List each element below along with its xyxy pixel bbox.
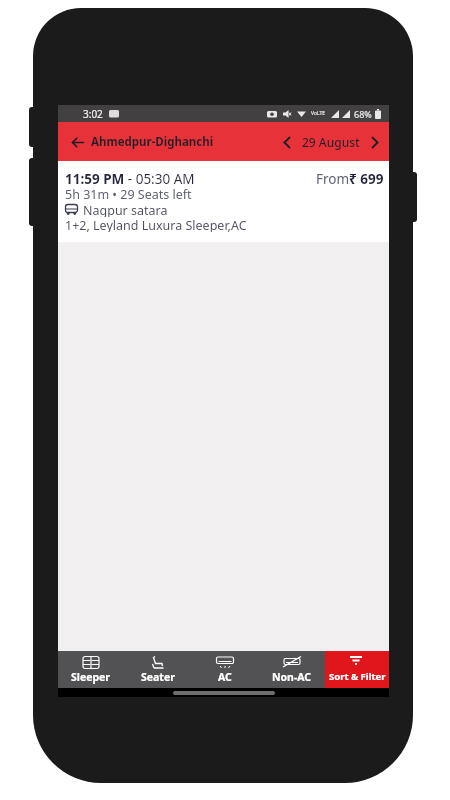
staticText: From₹ 699 (316, 170, 384, 186)
staticText: 3:02 (83, 107, 103, 121)
staticText: Ahmedpur-Dighanchi (91, 134, 214, 150)
staticText: 11:59 PM - 05:30 AM (65, 170, 195, 186)
staticText: Non-AC (272, 670, 312, 684)
staticText: 1+2, Leyland Luxura Sleeper,AC (65, 217, 247, 232)
staticText: 5h 31m • 29 Seats left (65, 186, 192, 202)
button[interactable]: Ahmedpur-Dighanchi (72, 134, 214, 150)
staticText: Sort & Filter (329, 670, 386, 683)
staticText: AC (218, 670, 232, 684)
button[interactable]: AC (191, 651, 258, 688)
staticText: Sleeper (71, 670, 111, 684)
button[interactable]: 29 August (283, 134, 379, 150)
button[interactable]: Non-AC (258, 651, 325, 688)
staticText: Nagpur satara (83, 202, 168, 217)
button[interactable]: 11:59 PM - 05:30 AM (58, 161, 389, 242)
button[interactable]: Sleeper (58, 651, 124, 688)
button[interactable]: Sort & Filter (325, 651, 389, 688)
button[interactable]: Seater (124, 651, 191, 688)
staticText: VoLTE (311, 110, 326, 117)
staticText: Seater (141, 670, 175, 684)
staticText: 68% (354, 108, 372, 120)
staticText: 29 August (302, 134, 360, 150)
